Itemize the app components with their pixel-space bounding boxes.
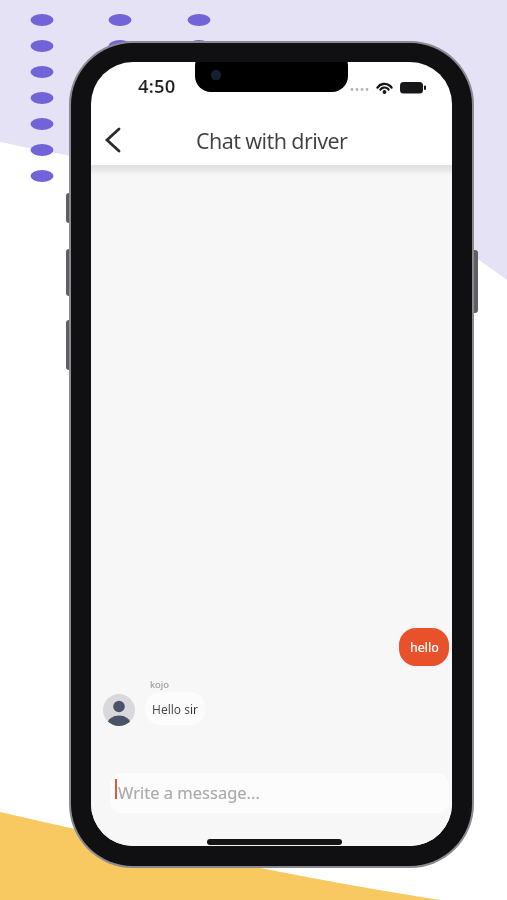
staticText: Hello sir: [152, 701, 199, 717]
staticText: Write a message...: [118, 781, 260, 803]
staticText: hello: [410, 639, 439, 656]
staticText: 4:50: [138, 73, 176, 98]
staticText: kojo: [150, 678, 170, 691]
staticText: Chat with driver: [196, 126, 348, 155]
